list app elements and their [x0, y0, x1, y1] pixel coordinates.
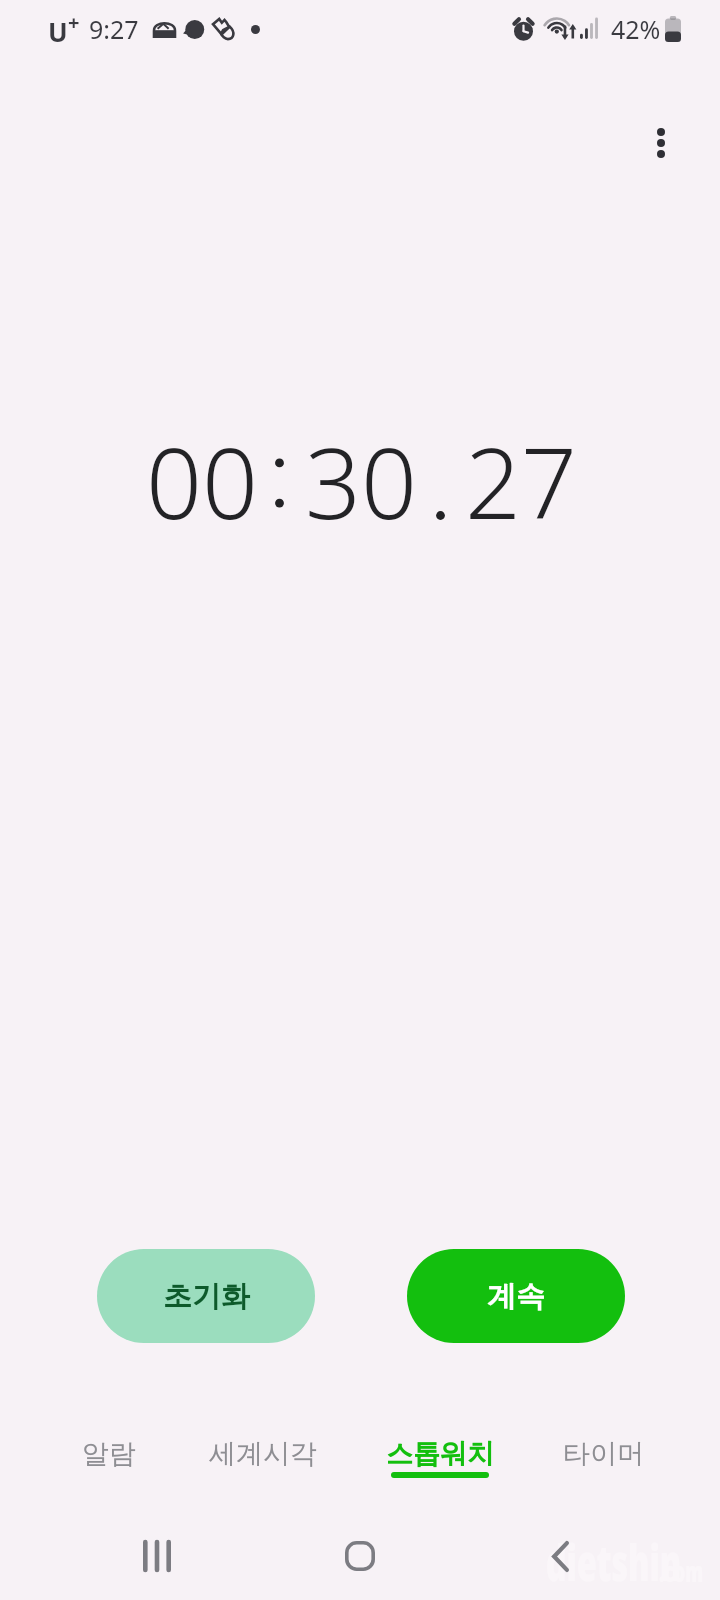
- button[interactable]: 초기화: [97, 1249, 315, 1343]
- staticText: 9:27: [89, 12, 139, 46]
- staticText: 알람: [82, 1437, 136, 1471]
- staticText: U: [48, 14, 68, 49]
- button[interactable]: Home: [312, 1508, 408, 1600]
- staticText: +: [68, 9, 80, 36]
- button[interactable]: 계속: [407, 1249, 625, 1343]
- staticText: dietshin: [546, 1528, 682, 1596]
- staticText: 스톱워치: [386, 1437, 494, 1471]
- staticText: 27: [465, 414, 577, 547]
- staticText: 초기화: [163, 1278, 250, 1315]
- staticText: 계속: [487, 1278, 545, 1315]
- staticText: 30: [305, 414, 417, 547]
- staticText: 42%: [611, 12, 661, 46]
- button[interactable]: 스톱워치: [350, 1402, 530, 1482]
- staticText: 타이머: [563, 1437, 644, 1471]
- button[interactable]: 타이머: [513, 1402, 693, 1482]
- button[interactable]: 세계시각: [173, 1402, 353, 1482]
- button[interactable]: Back: [512, 1508, 608, 1600]
- staticText: 00: [146, 414, 258, 547]
- staticText: 세계시각: [209, 1437, 317, 1471]
- button[interactable]: 알람: [19, 1402, 199, 1482]
- button[interactable]: Recent apps: [109, 1508, 205, 1600]
- button[interactable]: More options: [609, 95, 705, 191]
